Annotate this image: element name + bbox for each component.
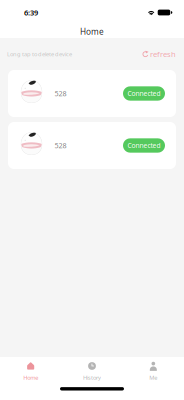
- staticText: Home: [80, 26, 104, 37]
- button[interactable]: Me: [123, 362, 184, 381]
- staticText: Connected: [127, 141, 160, 150]
- staticText: 528: [54, 89, 66, 98]
- staticText: Me: [149, 373, 157, 381]
- staticText: Home: [23, 373, 38, 381]
- button[interactable]: Home: [0, 362, 61, 381]
- staticText: Connected: [127, 89, 160, 98]
- staticText: Long tap to delete device: [7, 50, 72, 58]
- button[interactable]: History: [61, 362, 123, 381]
- staticText: History: [83, 373, 101, 381]
- button[interactable]: refresh: [142, 49, 184, 59]
- staticText: 6:39: [24, 7, 38, 18]
- button[interactable]: 528: [8, 122, 176, 169]
- button[interactable]: 528: [8, 70, 176, 117]
- staticText: 528: [54, 141, 66, 150]
- staticText: refresh: [150, 49, 176, 59]
